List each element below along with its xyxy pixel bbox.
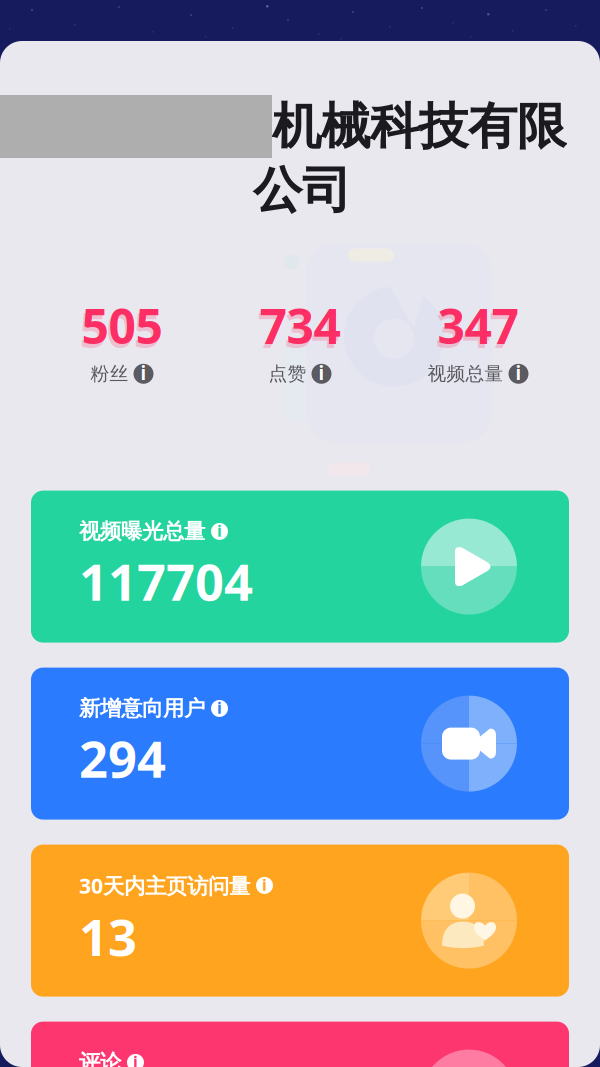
staticText: 347: [435, 298, 516, 361]
staticText: 新增意向用户: [79, 695, 205, 722]
staticText: i: [515, 360, 521, 385]
staticText: 点赞: [268, 362, 306, 385]
staticText: i: [140, 360, 146, 385]
staticText: i: [318, 360, 324, 385]
staticText: 机械科技有限: [272, 96, 566, 157]
button[interactable]: 347: [427, 294, 528, 385]
staticText: i: [217, 697, 222, 718]
staticText: 347: [437, 294, 518, 357]
button[interactable]: 视频曝光总量: [31, 491, 569, 643]
staticText: 粉丝: [90, 362, 128, 385]
staticText: 117704: [79, 548, 253, 615]
staticText: i: [133, 1051, 138, 1067]
staticText: 505: [81, 294, 162, 357]
button[interactable]: 评论: [31, 1022, 569, 1067]
staticText: 公司: [253, 160, 351, 221]
staticText: 视频总量: [427, 362, 503, 385]
button[interactable]: 30天内主页访问量: [31, 845, 569, 997]
staticText: 734: [257, 298, 338, 361]
staticText: 734: [259, 294, 340, 357]
staticText: 294: [79, 725, 166, 792]
staticText: 30天内主页访问量: [79, 871, 250, 900]
staticText: 评论: [79, 1049, 121, 1067]
button[interactable]: 新增意向用户: [31, 668, 569, 820]
button[interactable]: 734: [259, 294, 340, 385]
staticText: i: [262, 874, 267, 895]
staticText: 505: [79, 298, 160, 361]
button[interactable]: 505: [81, 294, 162, 385]
staticText: i: [217, 520, 222, 541]
staticText: 视频曝光总量: [79, 518, 205, 545]
staticText: 13: [79, 903, 137, 970]
